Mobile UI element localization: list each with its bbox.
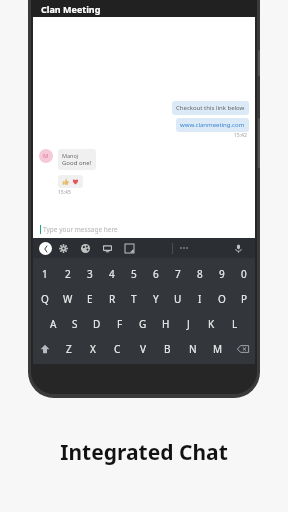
button[interactable]: More options [173,238,195,258]
staticText: I [198,292,202,306]
staticText: D [93,317,101,331]
button[interactable]: 4 [101,261,123,286]
button[interactable]: Type your message here [33,221,255,238]
staticText: O [218,292,226,306]
staticText: 15:42 [234,132,247,139]
staticText: W [63,292,73,306]
button[interactable]: M [205,336,230,361]
button[interactable]: J [177,311,200,336]
staticText: www.clanmeeting.com [180,121,245,129]
staticText: V [140,342,146,356]
button[interactable]: Voice input [227,238,249,258]
button[interactable]: P [233,286,255,311]
staticText: R [109,292,116,306]
staticText: G [139,317,147,331]
staticText: Checkout this link below [176,104,245,112]
staticText: N [189,342,197,356]
button[interactable]: 6 [145,261,167,286]
button[interactable]: C [105,336,130,361]
button[interactable]: Checkout this link below [172,101,249,115]
button[interactable]: X [81,336,105,361]
button[interactable]: R [101,286,123,311]
staticText: 2 [65,267,71,281]
staticText: Manoj [62,152,79,159]
staticText: X [90,342,96,356]
button[interactable]: S [64,311,86,336]
button[interactable]: 1 [33,261,56,286]
button[interactable]: K [200,311,223,336]
button[interactable]: Shift [33,336,57,361]
button[interactable]: T [123,286,145,311]
button[interactable]: Clipboard [118,238,140,258]
staticText: M [43,152,49,160]
button[interactable]: E [79,286,101,311]
button[interactable]: 9 [211,261,233,286]
button[interactable]: A [42,311,64,336]
staticText: F [117,317,123,331]
button[interactable]: W [56,286,79,311]
button[interactable]: 8 [189,261,211,286]
staticText: J [187,317,190,331]
staticText: L [232,317,238,331]
button[interactable]: O [211,286,233,311]
button[interactable]: 5 [123,261,145,286]
staticText: P [241,292,248,306]
button[interactable]: I [189,286,211,311]
staticText: E [87,292,93,306]
staticText: 5 [131,267,137,281]
button[interactable]: 2 [56,261,79,286]
button[interactable]: F [108,311,131,336]
button[interactable]: Stickers [96,238,118,258]
button[interactable]: G [131,311,154,336]
staticText: Z [66,342,72,356]
button[interactable]: Manoj [58,149,96,170]
button[interactable]: Collapse toolbar [39,242,52,255]
staticText: A [50,317,57,331]
staticText: 0 [241,267,247,281]
staticText: B [164,342,171,356]
staticText: T [131,292,137,306]
staticText: 1 [42,267,48,281]
staticText: M [213,342,223,356]
button[interactable]: Z [57,336,81,361]
staticText: 6 [153,267,159,281]
staticText: S [72,317,78,331]
button[interactable]: 7 [167,261,189,286]
button[interactable]: Backspace [230,336,255,361]
button[interactable]: H [154,311,177,336]
staticText: K [208,317,215,331]
button[interactable]: L [223,311,246,336]
staticText: Q [41,292,49,306]
button[interactable]: Q [33,286,56,311]
button[interactable]: D [86,311,108,336]
button[interactable]: www.clanmeeting.com [176,118,249,132]
staticText: Type your message here [43,225,118,234]
button[interactable]: U [167,286,189,311]
staticText: 15:45 [58,189,71,196]
button[interactable]: N [180,336,205,361]
button[interactable]: Y [145,286,167,311]
button[interactable]: B [155,336,180,361]
button[interactable]: Theme [74,238,96,258]
staticText: Y [153,292,159,306]
staticText: 8 [197,267,203,281]
staticText: 4 [109,267,115,281]
button[interactable] [58,175,83,188]
staticText: Good one! [62,159,92,167]
button[interactable]: Settings [52,238,74,258]
staticText: 7 [175,267,181,281]
button[interactable]: V [130,336,155,361]
staticText: 9 [219,267,225,281]
staticText: Integrated Chat [60,438,228,467]
staticText: C [114,342,121,356]
button[interactable]: 3 [79,261,101,286]
button[interactable]: 0 [233,261,255,286]
staticText: Clan Meeting [41,3,101,15]
staticText: H [162,317,170,331]
staticText: 3 [87,267,93,281]
staticText: U [174,292,182,306]
